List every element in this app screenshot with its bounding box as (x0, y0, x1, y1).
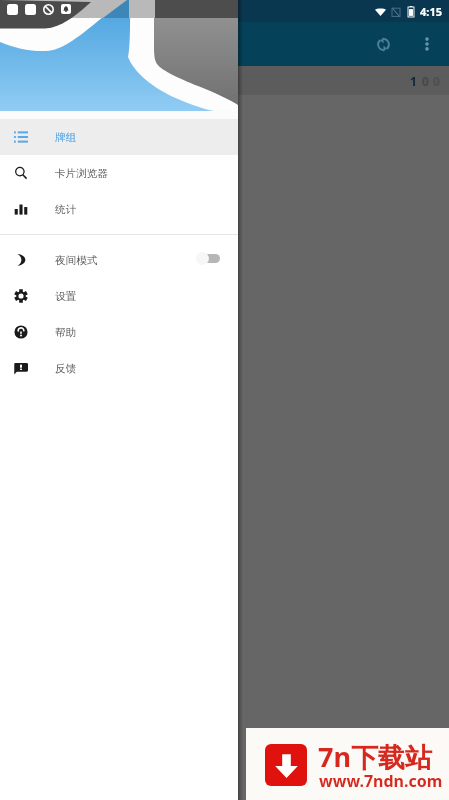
staticText: 设置 (55, 290, 77, 303)
button[interactable]: 牌组 (0, 119, 238, 155)
staticText: 0 (433, 73, 440, 89)
staticText: 反馈 (55, 362, 77, 375)
button[interactable]: More options (411, 28, 443, 60)
button[interactable]: Sync (364, 25, 402, 63)
staticText: 牌组 (55, 131, 77, 144)
button[interactable]: 设置 (0, 278, 238, 314)
staticText: 卡片浏览器 (55, 167, 108, 180)
staticText: 帮助 (55, 326, 77, 339)
staticText: 7n下载站 (318, 738, 432, 775)
button[interactable]: 统计 (0, 191, 238, 227)
staticText: 0 (422, 73, 429, 89)
button[interactable]: 夜间模式 (0, 242, 238, 278)
staticText: 4:15 (420, 4, 442, 19)
button[interactable]: 反馈 (0, 350, 238, 386)
button[interactable]: 帮助 (0, 314, 238, 350)
staticText: 统计 (55, 203, 77, 216)
staticText: 1 (410, 73, 417, 89)
staticText: 夜间模式 (55, 254, 98, 267)
button[interactable]: 卡片浏览器 (0, 155, 238, 191)
staticText: www.7ndn.com (319, 770, 443, 792)
